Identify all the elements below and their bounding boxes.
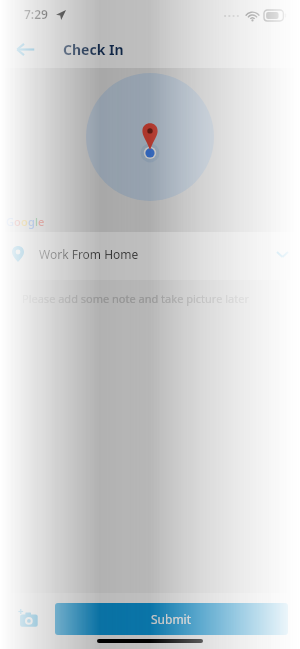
staticText: G: [6, 214, 14, 229]
button[interactable]: Map: [0, 68, 300, 232]
staticText: Please add some note and take picture la…: [22, 291, 249, 306]
staticText: o: [14, 214, 21, 229]
staticText: Submit: [151, 611, 192, 627]
staticText: 7:29: [24, 6, 48, 22]
button[interactable]: Submit: [55, 603, 288, 635]
button[interactable]: Work From Home: [0, 232, 300, 276]
staticText: l: [35, 214, 38, 229]
button[interactable]: Add photo: [12, 603, 44, 635]
staticText: e: [38, 214, 45, 229]
staticText: o: [21, 214, 28, 229]
button[interactable]: Please add some note and take picture la…: [11, 280, 289, 593]
staticText: Check In: [63, 40, 124, 59]
button[interactable]: Back: [8, 32, 42, 66]
staticText: Work From Home: [39, 246, 139, 262]
staticText: g: [28, 214, 35, 229]
